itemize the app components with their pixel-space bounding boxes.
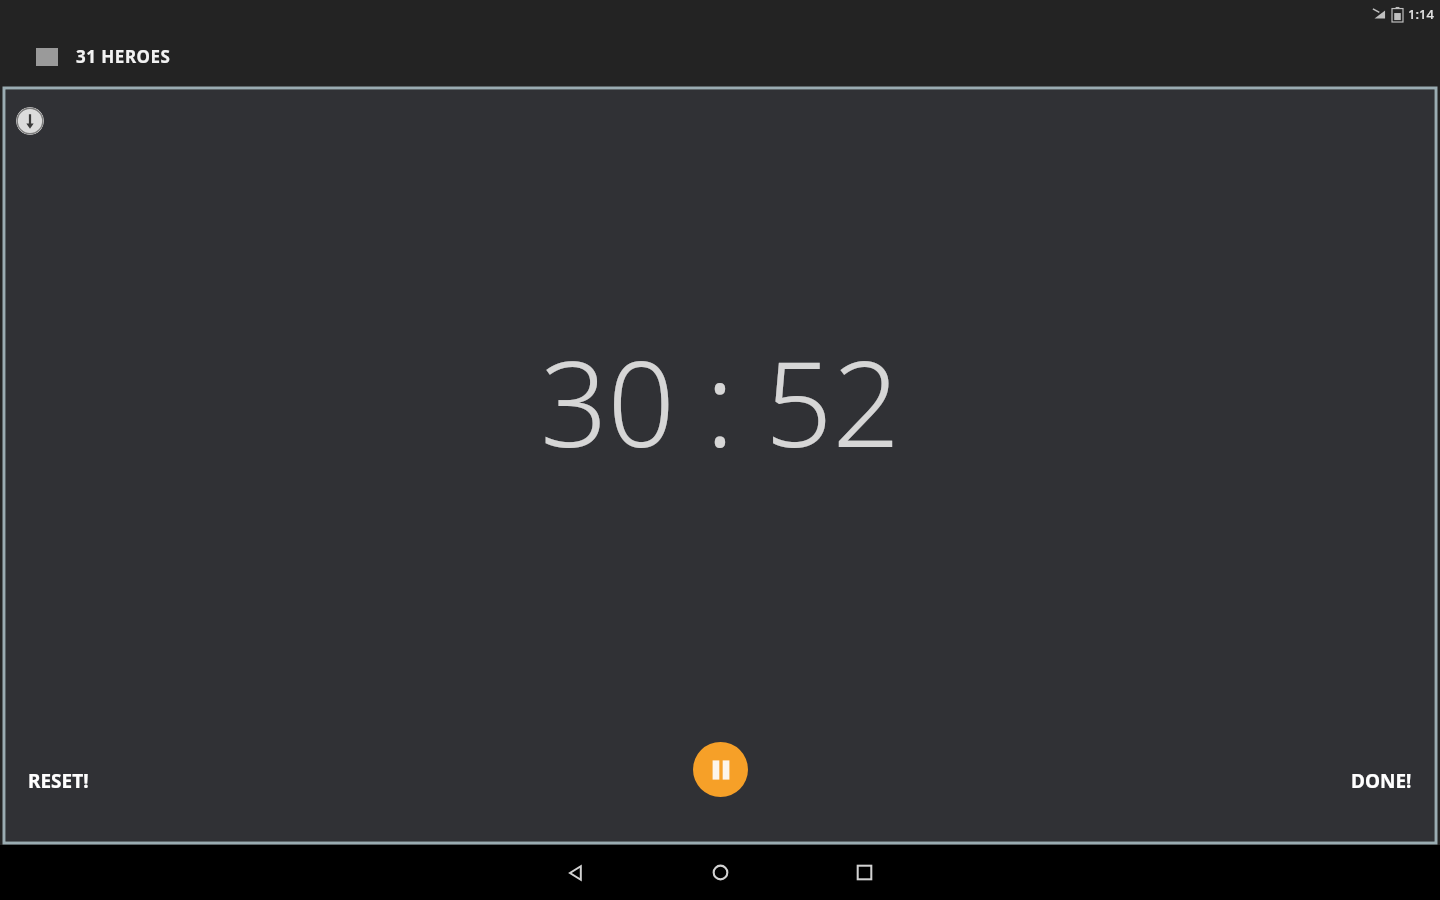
button[interactable]: DONE! — [1343, 760, 1420, 802]
staticText: 1:14 — [1408, 5, 1434, 23]
staticText: 31 HEROES — [76, 45, 171, 68]
staticText: DONE! — [1351, 768, 1412, 794]
button[interactable]: Recent apps — [828, 845, 900, 900]
button[interactable]: Home — [684, 845, 756, 900]
button[interactable]: RESET! — [20, 760, 97, 802]
staticText: 30 : 52 — [540, 321, 900, 482]
button[interactable]: Back — [540, 845, 612, 900]
button[interactable]: Pause — [693, 742, 748, 797]
staticText: RESET! — [28, 768, 89, 794]
button[interactable]: Refresh — [16, 107, 44, 135]
